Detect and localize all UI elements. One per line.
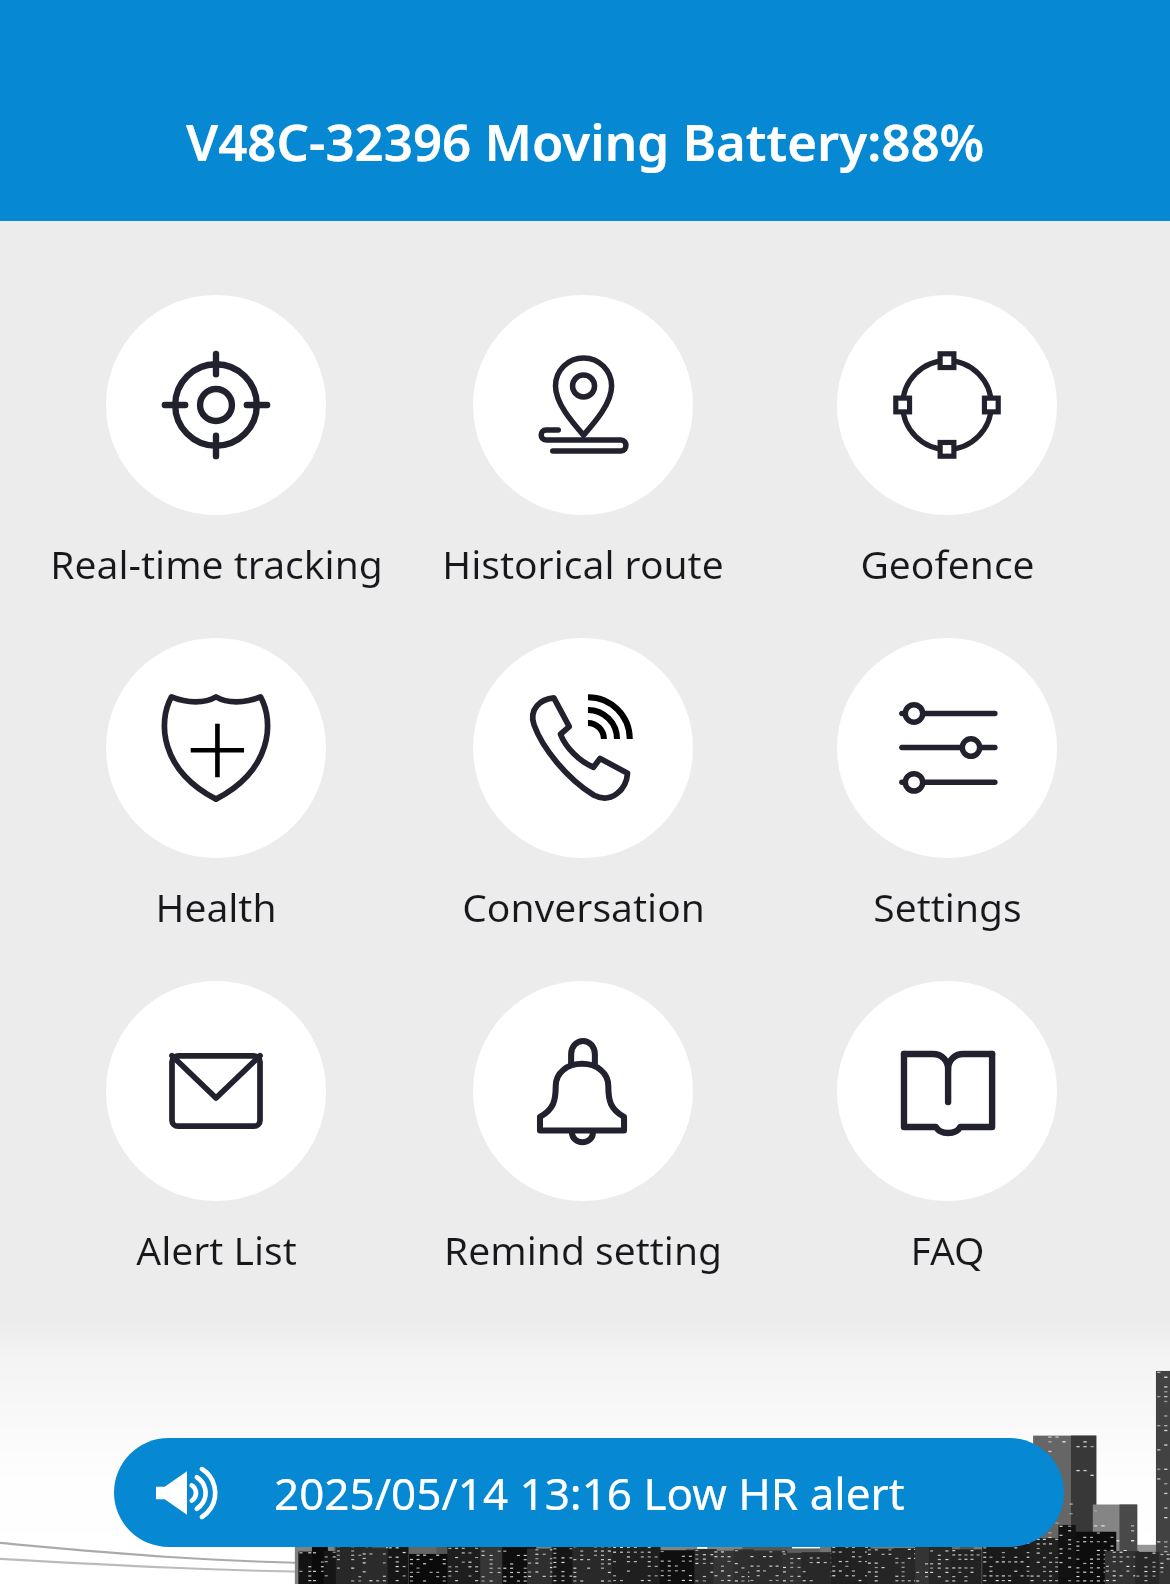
button[interactable]: Geofence: [767, 295, 1127, 590]
button[interactable]: Announce alert: [114, 1438, 1064, 1547]
staticText: Conversation: [462, 880, 705, 933]
staticText: Settings: [873, 880, 1022, 933]
button[interactable]: Historical route: [403, 295, 763, 590]
staticText: FAQ: [910, 1223, 985, 1276]
button[interactable]: Conversation: [403, 638, 763, 933]
button[interactable]: Alert List: [36, 981, 396, 1276]
button[interactable]: Remind setting: [403, 981, 763, 1276]
staticText: Real-time tracking: [50, 537, 383, 590]
button[interactable]: FAQ: [767, 981, 1127, 1276]
button[interactable]: Health: [36, 638, 396, 933]
staticText: Geofence: [860, 537, 1035, 590]
staticText: 2025/05/14 13:16 Low HR alert: [274, 1463, 905, 1523]
staticText: Alert List: [136, 1223, 297, 1276]
staticText: Remind setting: [444, 1223, 722, 1276]
staticText: V48C-32396 Moving Battery:88%: [186, 106, 985, 175]
other: Announce alert: [156, 1462, 218, 1524]
staticText: Health: [155, 880, 277, 933]
button[interactable]: Settings: [767, 638, 1127, 933]
staticText: Historical route: [442, 537, 724, 590]
button[interactable]: Real-time tracking: [36, 295, 396, 590]
